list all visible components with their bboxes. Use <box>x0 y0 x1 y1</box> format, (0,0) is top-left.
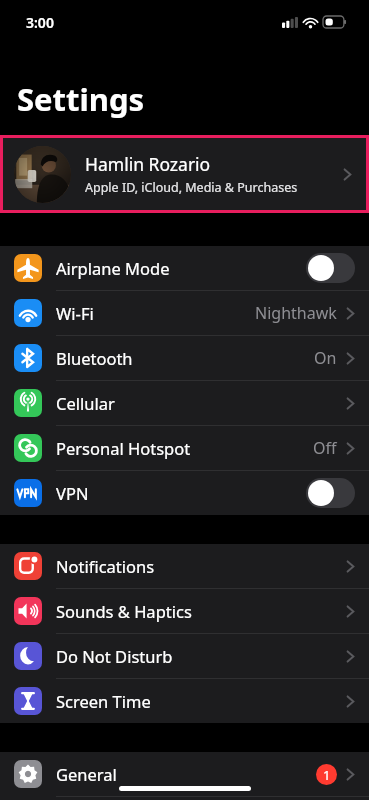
button[interactable]: Toggle <box>306 478 355 508</box>
button[interactable]: Bluetooth <box>0 336 369 380</box>
staticText: Screen Time <box>56 690 346 712</box>
staticText: On <box>314 347 337 369</box>
staticText: General <box>56 763 316 785</box>
button[interactable]: VPN <box>0 471 369 515</box>
button[interactable]: General <box>0 752 369 796</box>
staticText: Sounds & Haptics <box>56 600 346 622</box>
button[interactable]: Sounds & Haptics <box>0 589 369 633</box>
staticText: Airplane Mode <box>56 257 306 279</box>
staticText: Apple ID, iCloud, Media & Purchases <box>85 179 298 196</box>
staticText: VPN <box>56 482 306 504</box>
button[interactable]: Hamlin Rozario <box>3 138 366 210</box>
staticText: 3:00 <box>26 13 54 32</box>
staticText: Personal Hotspot <box>56 437 313 459</box>
button[interactable]: Airplane Mode <box>0 246 369 290</box>
staticText: Off <box>313 437 337 459</box>
staticText: Hamlin Rozario <box>85 152 211 176</box>
button[interactable]: Notifications <box>0 544 369 588</box>
button[interactable]: Wi-Fi <box>0 291 369 335</box>
staticText: Cellular <box>56 392 346 414</box>
staticText: Bluetooth <box>56 347 314 369</box>
staticText: Wi-Fi <box>56 302 255 324</box>
button[interactable]: Toggle <box>306 253 355 283</box>
staticText: 1 <box>323 766 331 784</box>
staticText: Nighthawk <box>255 302 337 324</box>
button[interactable]: Do Not Disturb <box>0 634 369 678</box>
staticText: Notifications <box>56 555 346 577</box>
button[interactable]: Personal Hotspot <box>0 426 369 470</box>
staticText: Do Not Disturb <box>56 645 346 667</box>
staticText: Settings <box>17 78 145 120</box>
button[interactable]: Screen Time <box>0 679 369 723</box>
button[interactable]: Cellular <box>0 381 369 425</box>
